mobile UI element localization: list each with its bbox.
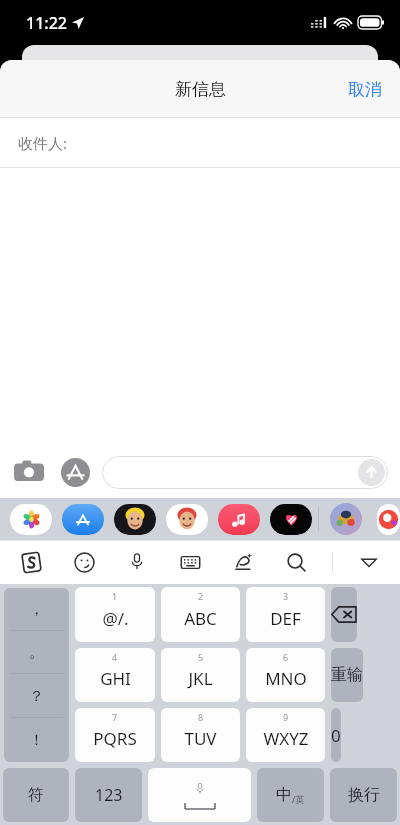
staticText: 4	[112, 651, 118, 663]
staticText: 重输	[331, 665, 363, 685]
staticText: MNO	[265, 667, 307, 690]
staticText: 11:22	[26, 12, 67, 34]
staticText: 新信息	[175, 79, 226, 100]
staticText: JKL	[188, 667, 213, 690]
staticText: /英	[292, 793, 305, 805]
button[interactable]: App	[377, 503, 400, 535]
button[interactable]: 0	[331, 708, 341, 762]
button[interactable]: Send	[102, 456, 388, 489]
staticText: TUV	[184, 727, 217, 750]
button[interactable]: 重输	[331, 648, 363, 702]
staticText: 9	[283, 711, 289, 723]
button[interactable]: Apps	[58, 455, 92, 489]
staticText: 1	[112, 590, 118, 602]
button[interactable]: 1	[75, 587, 155, 642]
button[interactable]: 9	[246, 708, 325, 762]
staticText: 5	[198, 651, 204, 663]
button[interactable]: Memoji stickers	[166, 503, 208, 535]
button[interactable]: 取消	[330, 67, 400, 112]
staticText: 收件人:	[18, 133, 68, 153]
button[interactable]: App Store	[62, 503, 104, 535]
staticText: 取消	[348, 79, 382, 100]
button[interactable]: 8	[161, 708, 240, 762]
staticText: 。	[29, 643, 44, 662]
button[interactable]: Photos	[10, 503, 52, 535]
button[interactable]: Send	[358, 459, 385, 486]
staticText: 7	[112, 711, 118, 723]
staticText: 123	[95, 784, 123, 806]
button[interactable]: 符	[3, 768, 69, 822]
button[interactable]: Keyboard	[173, 545, 207, 579]
button[interactable]: Camera	[12, 455, 46, 489]
button[interactable]: Handwriting	[226, 545, 260, 579]
button[interactable]: Voice input	[120, 545, 154, 579]
button[interactable]: Emoji	[67, 545, 101, 579]
staticText: @/.	[102, 607, 129, 630]
staticText: 0	[331, 724, 341, 747]
staticText: GHI	[100, 667, 131, 690]
button[interactable]: 3	[246, 587, 325, 642]
button[interactable]: ！	[4, 718, 69, 762]
button[interactable]: ，	[4, 588, 69, 631]
button[interactable]: Game	[325, 503, 367, 535]
staticText: ！	[29, 731, 44, 750]
staticText: 8	[198, 711, 204, 723]
button[interactable]: Sogou input	[14, 545, 48, 579]
button[interactable]: Hide toolbar	[352, 545, 386, 579]
staticText: DEF	[270, 607, 301, 630]
staticText: 3	[283, 590, 289, 602]
button[interactable]: Memoji	[114, 503, 156, 535]
button[interactable]: Fitness	[270, 503, 312, 535]
button[interactable]: 2	[161, 587, 240, 642]
button[interactable]: 123	[75, 768, 142, 822]
button[interactable]: Delete	[331, 587, 357, 642]
button[interactable]: 5	[161, 648, 240, 702]
staticText: ，	[29, 600, 44, 619]
button[interactable]: Chinese English toggle	[257, 768, 324, 822]
staticText: WXYZ	[263, 727, 309, 750]
staticText: 换行	[348, 785, 380, 805]
button[interactable]: Music	[218, 503, 260, 535]
staticText: 2	[198, 590, 204, 602]
button[interactable]: 4	[75, 648, 155, 702]
button[interactable]: Space	[148, 768, 251, 822]
staticText: PQRS	[93, 727, 137, 750]
button[interactable]: 7	[75, 708, 155, 762]
staticText: ABC	[184, 607, 217, 630]
staticText: 中	[276, 785, 292, 805]
button[interactable]: 6	[246, 648, 325, 702]
button[interactable]: 换行	[330, 768, 397, 822]
staticText: 6	[283, 651, 289, 663]
staticText: ？	[29, 687, 44, 706]
button[interactable]: 收件人:	[0, 118, 400, 168]
staticText: 符	[28, 785, 44, 805]
button[interactable]: ？	[4, 674, 69, 718]
button[interactable]: Search	[279, 545, 313, 579]
button[interactable]: 。	[4, 631, 69, 674]
